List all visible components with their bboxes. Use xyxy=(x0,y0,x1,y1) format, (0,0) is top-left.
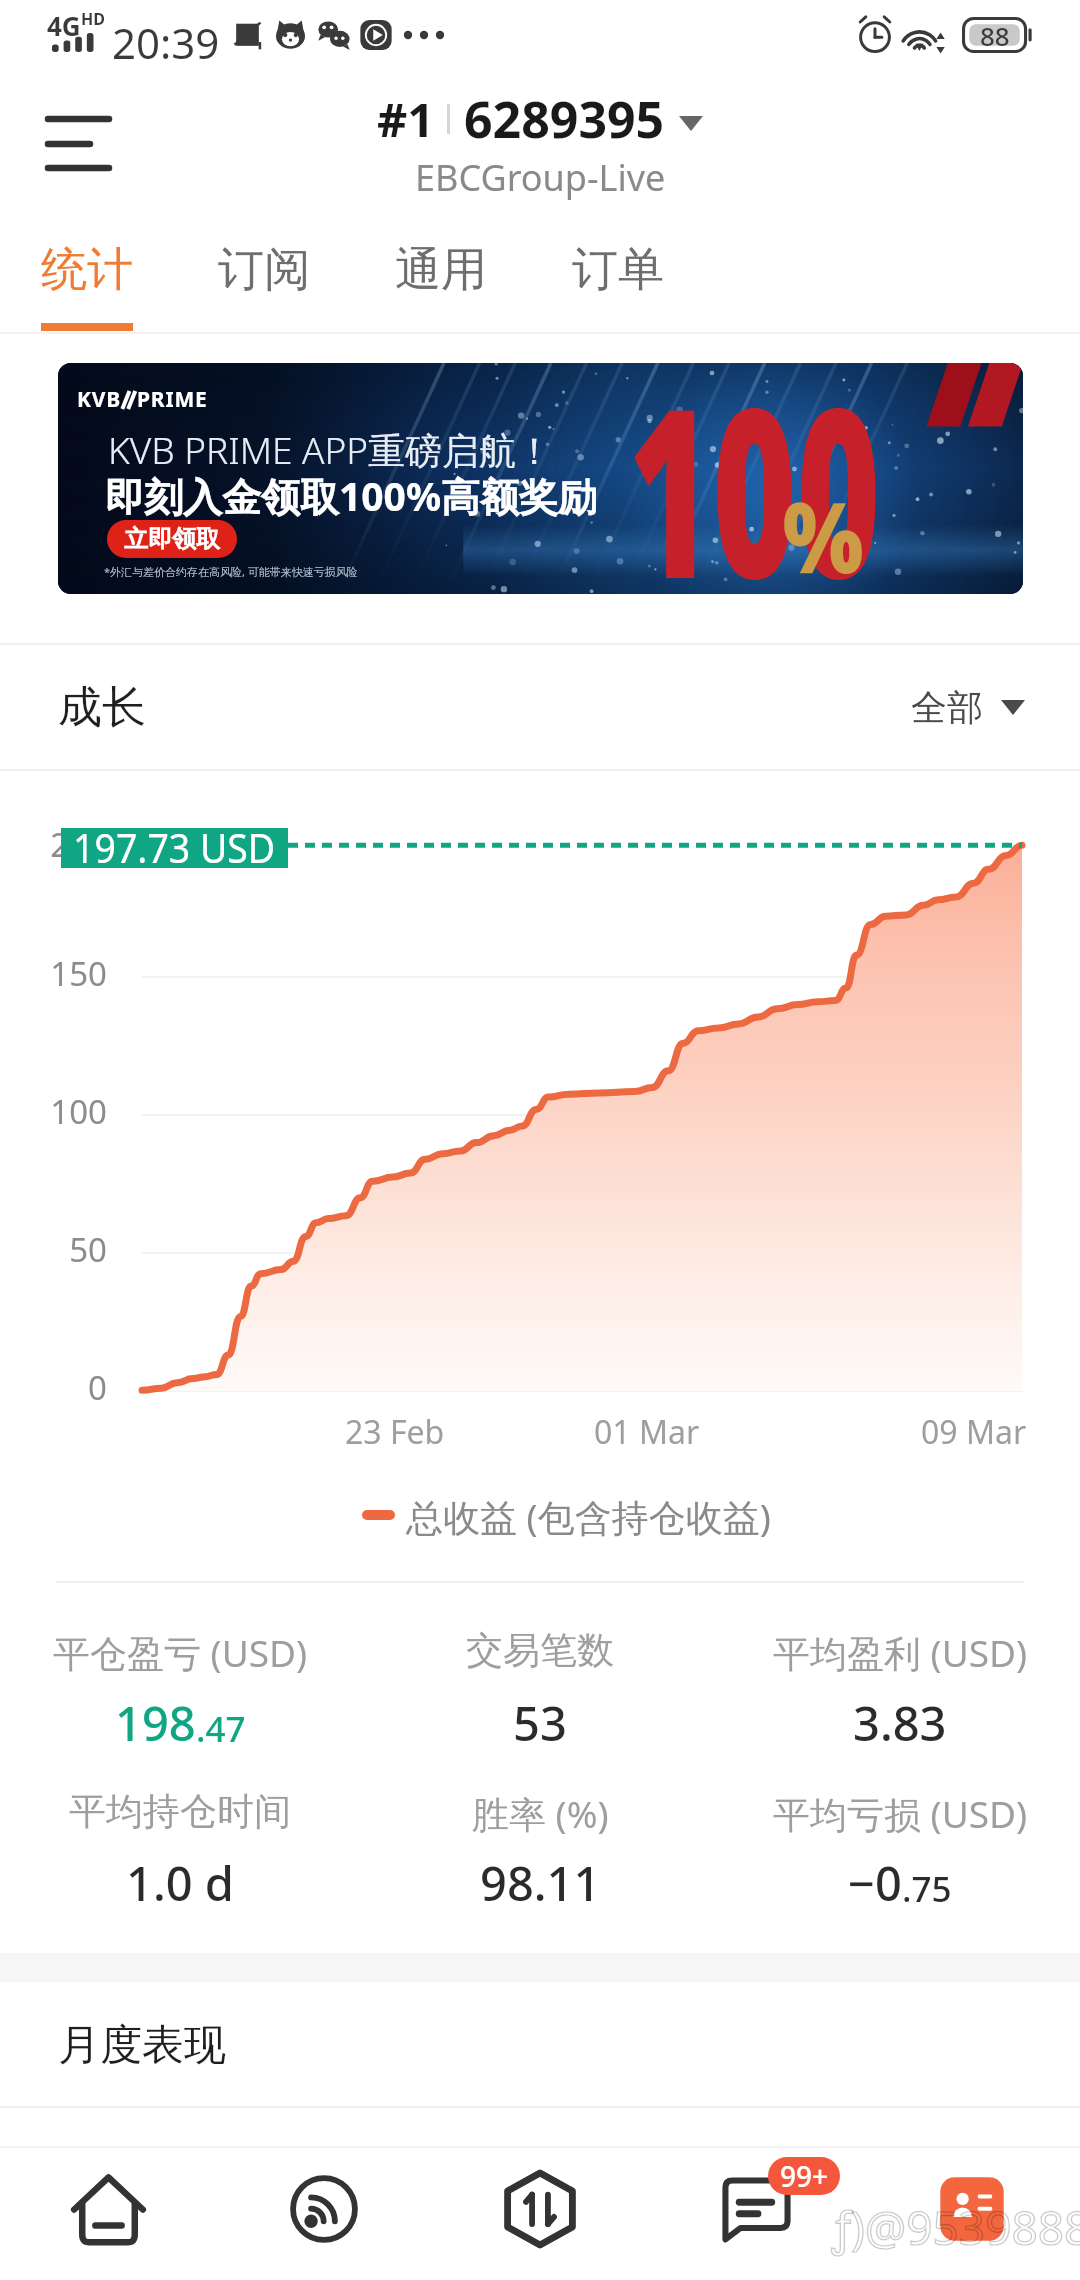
button[interactable]: 立即领取 xyxy=(107,520,237,558)
staticText: 98.11 xyxy=(480,1851,601,1915)
staticText: 平均持仓时间 xyxy=(69,1788,291,1835)
button[interactable]: #1 xyxy=(377,85,703,202)
button[interactable]: Menu xyxy=(30,96,128,192)
staticText: 立即领取 xyxy=(124,524,220,554)
staticText: 6289395 xyxy=(464,85,665,153)
staticText: 胜率 (%) xyxy=(472,1788,609,1839)
staticText: % xyxy=(783,469,864,594)
staticText: 23 Feb xyxy=(345,1410,445,1454)
staticText: *外汇与差价合约存在高风险, 可能带来快速亏损风险 xyxy=(104,564,358,579)
staticText: 99+ xyxy=(780,2157,829,2195)
staticText: ƒ)@9539888 xyxy=(832,2196,1080,2259)
staticText: 100 xyxy=(628,363,881,594)
staticText: PRIME xyxy=(137,385,208,414)
staticText: 200 xyxy=(0,822,107,867)
staticText: 197.73 USD xyxy=(73,821,276,875)
staticText: 统计 xyxy=(41,241,133,299)
staticText: −0 xyxy=(848,1851,902,1915)
staticText: .47 xyxy=(196,1705,246,1753)
staticText: 88 xyxy=(980,18,1010,53)
button[interactable]: Trade xyxy=(432,2148,648,2280)
staticText: 0 xyxy=(0,1365,107,1410)
staticText: 平均亏损 (USD) xyxy=(773,1788,1028,1839)
staticText: 01 Mar xyxy=(594,1410,700,1454)
button[interactable]: 通用 xyxy=(395,240,495,332)
staticText: KVB PRIME APP重磅启航！ xyxy=(108,424,554,475)
staticText: 交易笔数 xyxy=(466,1627,614,1674)
button[interactable]: 订阅 xyxy=(218,240,318,332)
staticText: 通用 xyxy=(395,241,487,299)
staticText: .75 xyxy=(902,1865,952,1913)
button[interactable]: 统计 xyxy=(41,240,141,332)
staticText: 平仓盈亏 (USD) xyxy=(53,1627,308,1678)
staticText: 09 Mar xyxy=(921,1410,1027,1454)
staticText: 53 xyxy=(513,1691,567,1755)
staticText: #1 xyxy=(377,87,435,151)
staticText: 平均盈利 (USD) xyxy=(773,1627,1028,1678)
button[interactable]: Messages xyxy=(701,2155,811,2265)
staticText: 4G xyxy=(47,8,81,43)
staticText: 150 xyxy=(0,951,107,996)
staticText: KVB xyxy=(77,385,121,414)
staticText: 订阅 xyxy=(218,241,310,299)
staticText: HD xyxy=(81,8,105,30)
button[interactable]: 100 xyxy=(58,363,1023,594)
staticText: 3.83 xyxy=(853,1691,947,1755)
button[interactable]: 全部 xyxy=(911,685,1025,730)
staticText: 100 xyxy=(0,1089,107,1134)
staticText: 订单 xyxy=(572,241,664,299)
staticText: 月度表现 xyxy=(58,2019,226,2072)
staticText: 1.0 d xyxy=(126,1851,234,1915)
staticText: ƒ)@9539888 xyxy=(832,2196,1080,2259)
button[interactable]: Profile xyxy=(864,2148,1080,2280)
button[interactable]: 订单 xyxy=(572,240,672,332)
staticText: 20:39 xyxy=(112,14,220,71)
staticText: 成长 xyxy=(58,680,146,735)
staticText: 50 xyxy=(0,1227,107,1272)
button[interactable]: Home xyxy=(0,2148,216,2280)
staticText: 总收益 (包含持仓收益) xyxy=(406,1491,771,1542)
staticText: 全部 xyxy=(911,685,983,730)
staticText: 198 xyxy=(115,1691,196,1755)
button[interactable]: Signals xyxy=(216,2148,432,2280)
staticText: EBCGroup-Live xyxy=(415,153,666,202)
staticText: 即刻入金领取100%高额奖励 xyxy=(105,469,598,522)
